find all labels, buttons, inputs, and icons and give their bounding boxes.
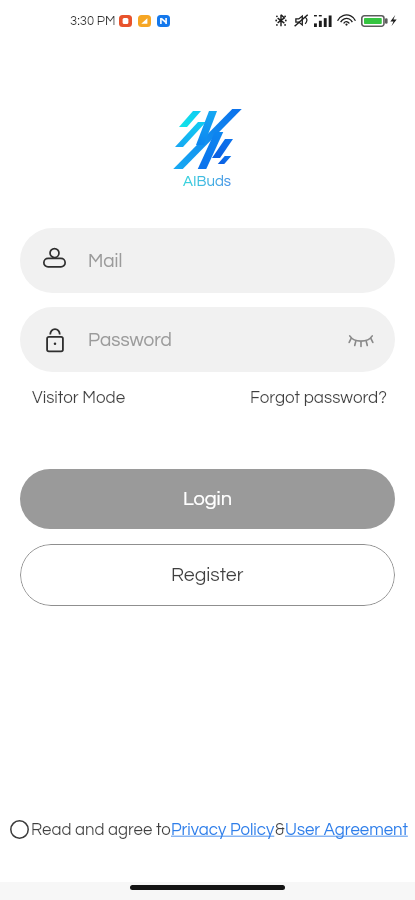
- button[interactable]: Forgot password?: [250, 389, 387, 407]
- button[interactable]: Visitor Mode: [32, 389, 126, 407]
- staticText: Register: [171, 565, 244, 585]
- button[interactable]: Login: [20, 469, 395, 529]
- staticText: Login: [183, 489, 233, 510]
- button[interactable]: Register: [20, 544, 395, 606]
- button[interactable]: Privacy Policy: [171, 821, 275, 838]
- button[interactable]: User Agreement: [285, 821, 408, 838]
- staticText: 3:30 PM: [70, 14, 116, 27]
- button[interactable]: Mail: [20, 228, 395, 293]
- staticText: Read and agree to: [31, 821, 171, 838]
- staticText: AIBuds: [183, 174, 232, 189]
- button[interactable]: Agree checkbox: [7, 817, 31, 841]
- staticText: Mail: [88, 251, 123, 271]
- staticText: Password: [88, 330, 172, 350]
- staticText: &: [275, 821, 285, 838]
- button[interactable]: Password: [20, 307, 395, 372]
- button[interactable]: Show password: [345, 324, 377, 356]
